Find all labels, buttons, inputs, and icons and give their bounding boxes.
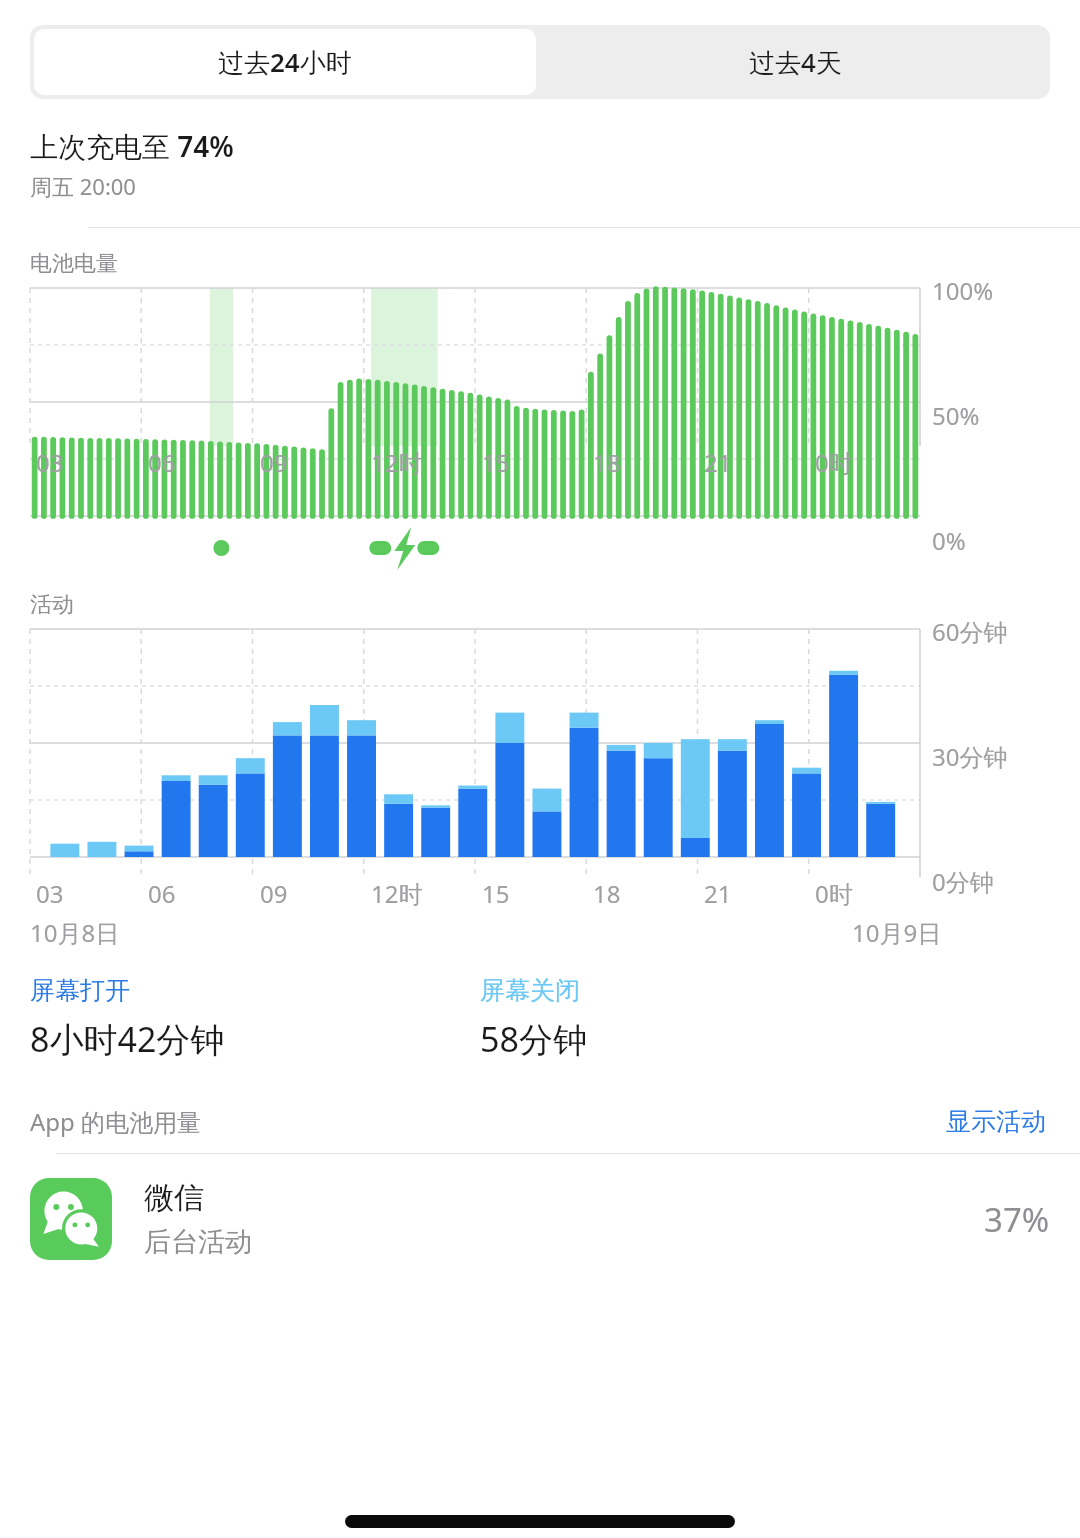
staticText: 15: [482, 446, 510, 479]
staticText: 30分钟: [932, 740, 1008, 773]
staticText: 58分钟: [480, 1016, 587, 1062]
staticText: 活动: [30, 591, 74, 619]
staticText: 屏幕打开: [30, 975, 130, 1006]
staticText: 0分钟: [932, 865, 994, 898]
staticText: 电池电量: [30, 250, 118, 278]
staticText: 100%: [932, 274, 994, 307]
staticText: 10月8日: [30, 916, 120, 949]
staticText: 18: [593, 877, 621, 910]
staticText: 12时: [371, 877, 423, 910]
staticText: 上次充电至 74%: [30, 127, 234, 165]
staticText: 50%: [932, 399, 980, 432]
staticText: 03: [36, 446, 64, 479]
staticText: 过去4天: [749, 44, 842, 80]
staticText: 后台活动: [144, 1225, 252, 1259]
staticText: 37%: [984, 1197, 1050, 1242]
button[interactable]: 过去24小时: [34, 29, 536, 95]
staticText: 18: [593, 446, 621, 479]
staticText: 15: [482, 877, 510, 910]
button[interactable]: 过去4天: [540, 25, 1050, 99]
staticText: 屏幕关闭: [480, 975, 580, 1006]
staticText: 06: [148, 877, 176, 910]
staticText: 周五 20:00: [30, 171, 136, 201]
staticText: App 的电池用量: [30, 1105, 202, 1138]
staticText: 0时: [815, 446, 853, 479]
staticText: 微信: [144, 1179, 204, 1217]
button[interactable]: 显示活动: [942, 1102, 1050, 1141]
staticText: 06: [148, 446, 176, 479]
staticText: 09: [260, 877, 288, 910]
staticText: 21: [704, 446, 732, 479]
staticText: 显示活动: [946, 1106, 1046, 1137]
staticText: 0时: [815, 877, 853, 910]
other: 微信: [30, 1178, 112, 1260]
staticText: 10月9日: [852, 916, 942, 949]
staticText: 12时: [371, 446, 423, 479]
button[interactable]: 微信: [0, 1154, 1080, 1284]
staticText: 21: [704, 877, 732, 910]
staticText: 0%: [932, 524, 966, 557]
staticText: 60分钟: [932, 615, 1008, 648]
staticText: 8小时42分钟: [30, 1016, 225, 1062]
staticText: 03: [36, 877, 64, 910]
staticText: 过去24小时: [218, 44, 352, 80]
staticText: 09: [260, 446, 288, 479]
